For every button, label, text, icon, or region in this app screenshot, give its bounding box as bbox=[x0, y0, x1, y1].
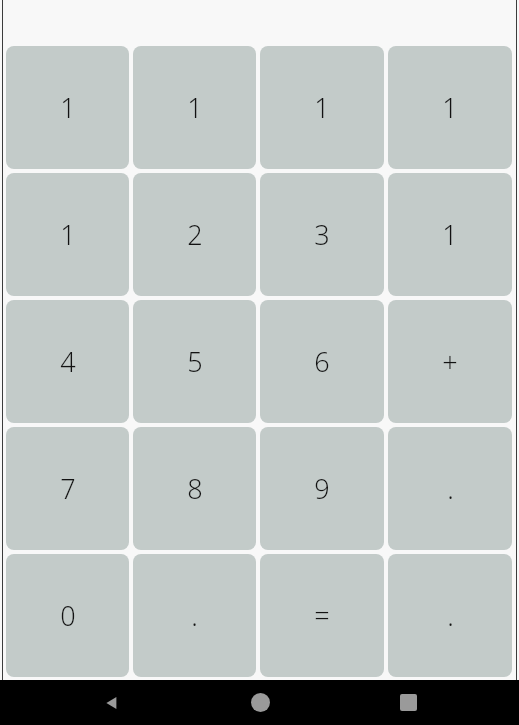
button[interactable]: = bbox=[260, 554, 384, 677]
staticText: 3 bbox=[314, 216, 330, 253]
staticText: 1 bbox=[60, 216, 76, 253]
button[interactable]: 1 bbox=[260, 46, 384, 169]
staticText: . bbox=[191, 597, 198, 634]
staticText: + bbox=[442, 343, 458, 380]
button[interactable]: + bbox=[388, 300, 512, 423]
staticText: 1 bbox=[314, 89, 330, 126]
button[interactable]: 1 bbox=[388, 46, 512, 169]
button[interactable]: 4 bbox=[6, 300, 129, 423]
button[interactable]: 1 bbox=[388, 173, 512, 296]
button[interactable]: 1 bbox=[6, 173, 129, 296]
staticText: 2 bbox=[187, 216, 203, 253]
button[interactable]: 5 bbox=[133, 300, 256, 423]
staticText: 4 bbox=[60, 343, 76, 380]
staticText: 1 bbox=[60, 89, 76, 126]
button[interactable]: Recent apps bbox=[384, 680, 432, 725]
staticText: = bbox=[314, 597, 330, 634]
button[interactable]: Home bbox=[236, 680, 284, 725]
button[interactable]: 1 bbox=[133, 46, 256, 169]
staticText: 1 bbox=[442, 89, 458, 126]
button[interactable]: 1 bbox=[6, 46, 129, 169]
button[interactable]: . bbox=[388, 427, 512, 550]
button[interactable]: 3 bbox=[260, 173, 384, 296]
staticText: 5 bbox=[187, 343, 203, 380]
staticText: . bbox=[447, 470, 454, 507]
staticText: 9 bbox=[314, 470, 330, 507]
staticText: 1 bbox=[442, 216, 458, 253]
staticText: 1 bbox=[187, 89, 203, 126]
staticText: . bbox=[447, 597, 454, 634]
button[interactable]: Back bbox=[88, 680, 136, 725]
button[interactable]: 2 bbox=[133, 173, 256, 296]
staticText: 7 bbox=[60, 470, 76, 507]
staticText: 0 bbox=[60, 597, 76, 634]
button[interactable]: . bbox=[388, 554, 512, 677]
button[interactable]: 6 bbox=[260, 300, 384, 423]
button[interactable]: . bbox=[133, 554, 256, 677]
button[interactable]: 0 bbox=[6, 554, 129, 677]
staticText: 8 bbox=[187, 470, 203, 507]
button[interactable]: 8 bbox=[133, 427, 256, 550]
staticText: 6 bbox=[314, 343, 330, 380]
button[interactable]: 9 bbox=[260, 427, 384, 550]
button[interactable]: 7 bbox=[6, 427, 129, 550]
